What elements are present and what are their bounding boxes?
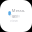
staticText: Tap to view <box>10 14 20 23</box>
staticText: Messages <box>12 8 25 19</box>
